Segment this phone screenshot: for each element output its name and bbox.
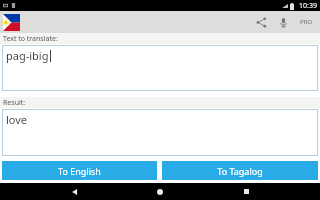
staticText: To Tagalog [217, 165, 263, 177]
staticText: pag-ibig [6, 48, 49, 63]
button[interactable]: To English [2, 161, 157, 180]
button[interactable]: love [2, 109, 318, 156]
staticText: Result: [3, 98, 26, 108]
button[interactable]: App icon [2, 13, 21, 32]
button[interactable]: Recent apps [235, 183, 257, 200]
button[interactable]: pag-ibig [2, 45, 318, 91]
button[interactable]: PRO [294, 11, 318, 33]
staticText: Text to translate: [3, 34, 58, 44]
button[interactable]: Back [64, 183, 86, 200]
staticText: To English [58, 165, 101, 177]
staticText: love [6, 112, 28, 127]
button[interactable]: Share [250, 11, 272, 33]
button[interactable]: Home [149, 183, 171, 200]
button[interactable]: Voice input [272, 11, 294, 33]
staticText: 10:39 [299, 1, 317, 11]
button[interactable]: To Tagalog [162, 161, 318, 180]
staticText: PRO [300, 18, 313, 26]
